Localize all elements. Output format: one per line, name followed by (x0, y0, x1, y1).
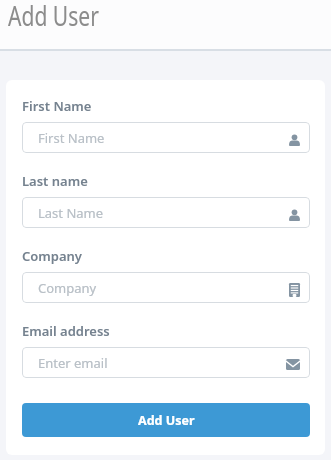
button[interactable]: Enter email (22, 347, 310, 378)
staticText: First Name (22, 97, 92, 115)
staticText: Company (38, 279, 289, 297)
button[interactable]: First Name (22, 122, 310, 153)
staticText: Enter email (38, 354, 286, 372)
staticText: Last name (22, 172, 88, 190)
staticText: Add User (8, 0, 99, 34)
button[interactable]: Last Name (22, 197, 310, 228)
staticText: Last Name (38, 204, 289, 222)
button[interactable]: Company (22, 272, 310, 303)
button[interactable]: Add User (22, 403, 310, 437)
staticText: Company (22, 247, 82, 265)
staticText: Email address (22, 322, 110, 340)
staticText: Add User (138, 412, 195, 429)
staticText: First Name (38, 129, 289, 147)
